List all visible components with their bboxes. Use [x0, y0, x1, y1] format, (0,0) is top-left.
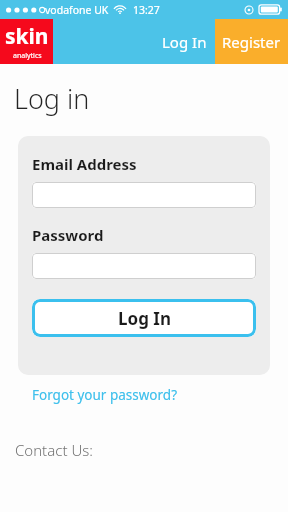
staticText: Log In [162, 32, 207, 52]
button[interactable]: Skin Analytics home [0, 19, 53, 64]
staticText: analytics [13, 51, 42, 61]
staticText: Password [32, 225, 104, 245]
button[interactable]: Register [215, 19, 288, 64]
button[interactable]: Forgot your password? [32, 384, 178, 406]
staticText: 13:27 [133, 3, 160, 17]
button[interactable]: Text input [32, 182, 256, 208]
staticText: Log in [14, 80, 90, 117]
staticText: vodafone UK [45, 3, 109, 17]
button[interactable]: Log In [32, 299, 256, 337]
button[interactable]: Log In [153, 19, 215, 64]
staticText: Forgot your password? [32, 386, 178, 404]
staticText: Register [222, 32, 281, 52]
staticText: Log In [118, 307, 171, 330]
staticText: Email Address [32, 154, 137, 174]
button[interactable]: Text input [32, 253, 256, 279]
staticText: Contact Us: [15, 440, 93, 460]
staticText: skin [5, 22, 49, 51]
